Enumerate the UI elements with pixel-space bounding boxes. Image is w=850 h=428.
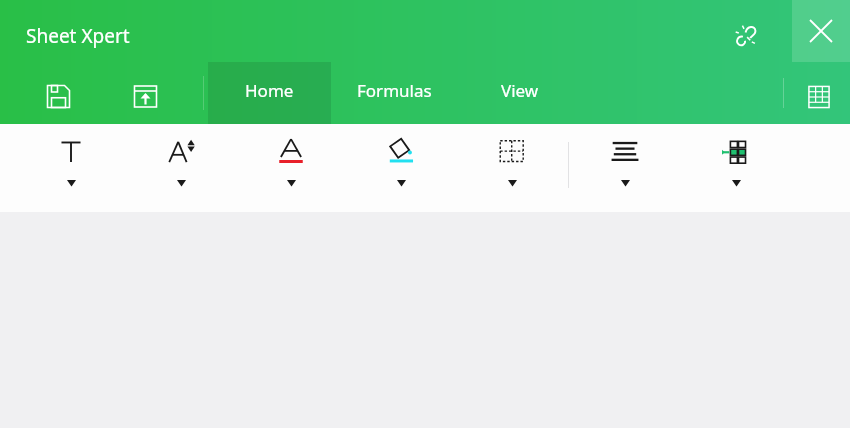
button[interactable]: Export xyxy=(121,72,169,120)
staticText: View xyxy=(501,79,539,102)
staticText: Sheet Xpert xyxy=(26,23,130,49)
button[interactable]: Font xyxy=(46,130,96,206)
button[interactable]: View xyxy=(470,62,570,124)
staticText: Formulas xyxy=(357,79,432,102)
button[interactable]: Formulas xyxy=(337,62,451,124)
staticText: Home xyxy=(245,79,294,102)
button[interactable]: Sheets xyxy=(795,73,843,121)
button[interactable]: Close xyxy=(792,0,850,62)
button[interactable]: Fill color xyxy=(376,130,426,206)
button[interactable]: Alignment xyxy=(600,130,650,206)
button[interactable]: Font color xyxy=(266,130,316,206)
button[interactable]: Home xyxy=(208,62,331,124)
button[interactable]: Insert cells xyxy=(711,130,761,206)
button[interactable]: Font size xyxy=(156,130,206,206)
button[interactable]: Break link xyxy=(718,8,770,60)
button[interactable]: Borders xyxy=(487,130,537,206)
button[interactable]: Save xyxy=(34,72,82,120)
